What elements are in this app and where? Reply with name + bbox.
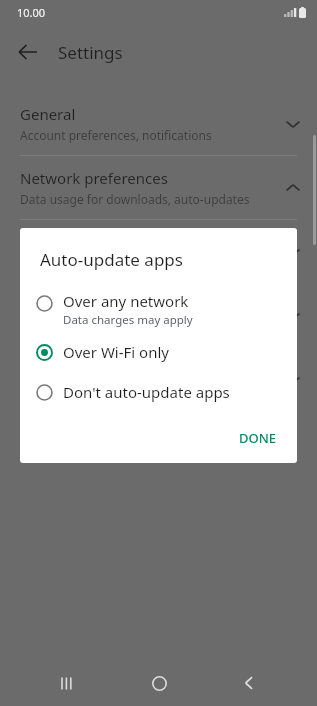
staticText: General: [20, 104, 76, 124]
button[interactable]: Over any network: [20, 287, 297, 332]
button[interactable]: Back: [6, 30, 50, 74]
staticText: Account preferences, notifications: [20, 127, 212, 143]
staticText: Parental control, parent guide: [20, 319, 189, 335]
staticText: Don't auto-update apps: [63, 382, 230, 402]
button[interactable]: DONE: [227, 421, 289, 455]
staticText: DONE: [239, 429, 277, 447]
staticText: Network preferences: [20, 168, 168, 188]
staticText: Data usage for downloads, auto-updates: [20, 191, 250, 207]
staticText: Family: [20, 296, 66, 316]
staticText: About: [20, 360, 63, 380]
staticText: Fingerprint, purchase authentication: [20, 255, 227, 271]
staticText: Settings: [58, 41, 123, 64]
button[interactable]: Don't auto-update apps: [20, 378, 297, 406]
button[interactable]: General: [0, 92, 317, 155]
button[interactable]: Back: [226, 660, 272, 706]
staticText: Data charges may apply: [63, 312, 193, 328]
staticText: Over Wi-Fi only: [63, 342, 169, 362]
button[interactable]: Network preferences: [0, 156, 317, 219]
button[interactable]: Recent apps: [45, 660, 91, 706]
button[interactable]: Family: [0, 284, 317, 347]
staticText: Play Store, build version, device certif…: [20, 383, 267, 399]
staticText: Auto-update apps: [40, 248, 183, 271]
button[interactable]: Authentication: [0, 220, 317, 283]
staticText: Over any network: [63, 291, 189, 311]
staticText: 10.00: [17, 5, 46, 20]
button[interactable]: About: [0, 348, 317, 411]
button[interactable]: Over Wi-Fi only: [20, 338, 297, 366]
button[interactable]: Home: [136, 660, 182, 706]
